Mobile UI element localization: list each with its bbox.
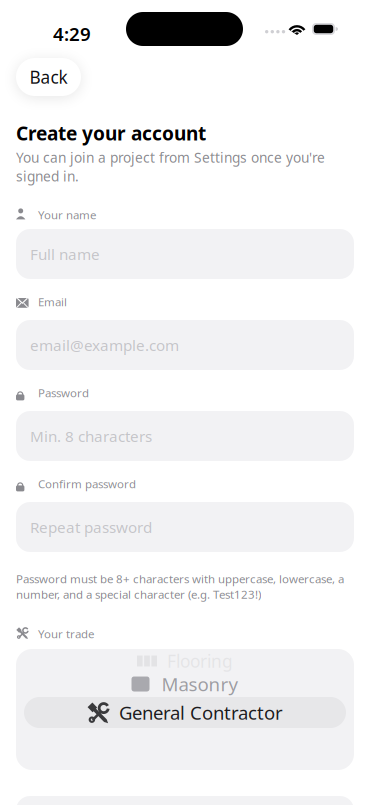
staticText: Back: [29, 65, 67, 89]
staticText: You can join a project from Settings onc…: [16, 148, 325, 185]
button[interactable]: Full name: [16, 229, 354, 279]
button[interactable]: email@example.com: [16, 320, 354, 370]
staticText: Masonry: [161, 671, 238, 697]
staticText: Min. 8 characters: [30, 426, 152, 446]
staticText: Your name: [38, 207, 96, 223]
staticText: Repeat password: [30, 517, 152, 537]
staticText: Create your account: [16, 120, 206, 146]
staticText: Your trade: [38, 626, 94, 642]
button[interactable]: Min. 8 characters: [16, 411, 354, 461]
staticText: General Contractor: [119, 700, 283, 725]
staticText: Password: [38, 385, 89, 401]
button[interactable]: Back: [16, 58, 81, 96]
staticText: 4:29: [53, 21, 91, 46]
staticText: Password must be 8+ characters with uppe…: [16, 571, 344, 602]
staticText: Confirm password: [38, 476, 136, 492]
button[interactable]: Repeat password: [16, 502, 354, 552]
staticText: Email: [38, 294, 67, 310]
staticText: Flooring: [167, 649, 233, 673]
staticText: Full name: [30, 244, 100, 264]
staticText: email@example.com: [30, 335, 179, 355]
